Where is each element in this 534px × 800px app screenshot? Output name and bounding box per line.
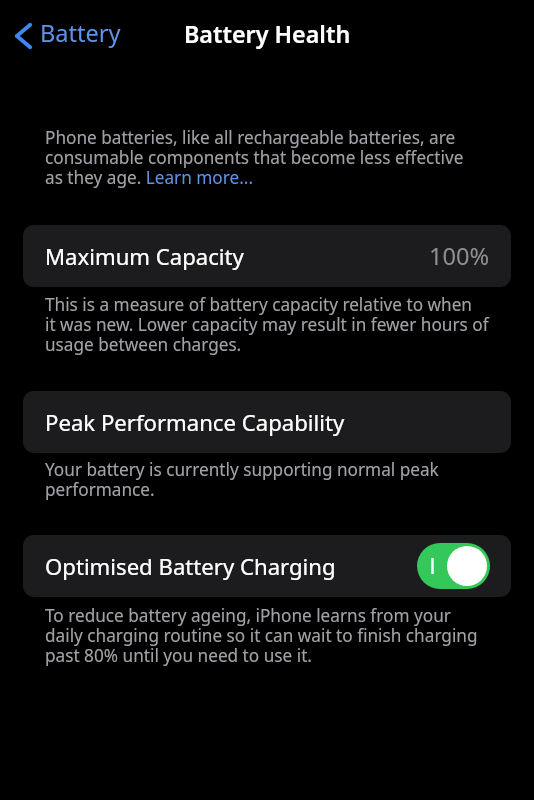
staticText: 100% (429, 240, 490, 272)
staticText: Phone batteries, like all rechargeable b… (45, 128, 464, 188)
other: Back (14, 22, 32, 50)
staticText: To reduce battery ageing, iPhone learns … (45, 606, 478, 666)
staticText: Battery Health (184, 18, 351, 50)
button[interactable]: Optimised Battery Charging (23, 535, 511, 597)
staticText: Peak Performance Capability (45, 407, 345, 437)
button[interactable]: Peak Performance Capability (23, 391, 511, 453)
button[interactable]: Back (10, 15, 131, 53)
staticText: This is a measure of battery capacity re… (45, 295, 489, 355)
staticText: Optimised Battery Charging (45, 551, 336, 581)
staticText: Battery (40, 17, 121, 49)
staticText: Maximum Capacity (45, 241, 244, 271)
button[interactable]: Optimised Battery Charging, on (417, 543, 490, 589)
button[interactable]: Maximum Capacity (23, 225, 511, 287)
staticText: Your battery is currently supporting nor… (45, 460, 439, 500)
